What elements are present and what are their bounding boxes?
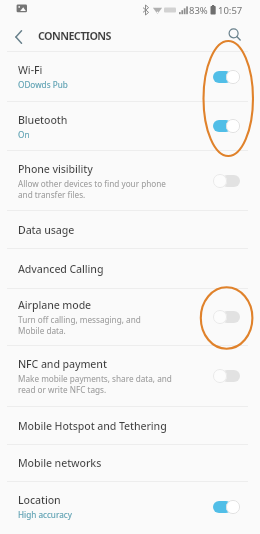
staticText: Data usage [18,223,75,237]
button[interactable]: NFC and payment toggle [213,363,240,389]
staticText: Turn off calling, messaging, and Mobile … [18,314,141,336]
button[interactable]: Phone visibility [0,151,260,210]
staticText: ODowds Pub [18,79,68,90]
staticText: Airplane mode [18,298,92,312]
staticText: Wi-Fi [18,63,43,77]
staticText: Location [18,493,61,507]
button[interactable]: Airplane mode [0,289,260,345]
button[interactable]: Advanced Calling [0,249,260,288]
button[interactable]: Wi-Fi toggle [213,64,240,90]
button[interactable]: Data usage [0,211,260,248]
button[interactable]: Location toggle [213,494,240,520]
button[interactable]: Mobile Hotspot and Tethering [0,407,260,444]
staticText: Make mobile payments, share data, and re… [18,373,172,395]
staticText: High accuracy [18,509,72,520]
button[interactable]: Search [220,20,250,50]
staticText: Advanced Calling [18,262,104,276]
staticText: On [18,129,30,140]
button[interactable]: Phone visibility toggle [213,168,240,194]
staticText: Phone visibility [18,162,93,176]
button[interactable]: Airplane mode toggle [213,304,240,330]
button[interactable]: Bluetooth [0,102,260,150]
staticText: 10:57 [218,4,243,17]
staticText: Bluetooth [18,113,68,127]
button[interactable]: Location [0,482,260,531]
button[interactable]: Bluetooth toggle [213,113,240,139]
button[interactable]: Mobile networks [0,445,260,481]
button[interactable]: NFC and payment [0,346,260,406]
staticText: Mobile Hotspot and Tethering [18,419,167,433]
staticText: NFC and payment [18,357,107,371]
staticText: Allow other devices to find your phone a… [18,178,166,200]
staticText: Mobile networks [18,456,102,470]
button[interactable]: Back [4,22,34,52]
staticText: 83% [189,4,208,17]
button[interactable]: Wi-Fi [0,52,260,101]
staticText: CONNECTIONS [38,28,111,43]
